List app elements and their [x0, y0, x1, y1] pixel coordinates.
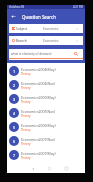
button[interactable]: Back [9, 12, 18, 21]
staticText: 5 [13, 125, 16, 130]
button[interactable]: Subject [9, 24, 83, 33]
staticText: Question Search [22, 14, 56, 20]
button[interactable]: 2 [7, 78, 85, 92]
staticText: Subject [16, 27, 28, 31]
staticText: Economics [43, 27, 59, 31]
staticText: 6 [13, 139, 16, 144]
staticText: Economics2005(Nov) [21, 109, 56, 114]
button[interactable]: 6 [7, 134, 85, 148]
staticText: Theory [21, 72, 31, 76]
staticText: Theory [21, 156, 31, 160]
staticText: Theory [21, 100, 31, 104]
staticText: 4:21 PM [73, 5, 83, 9]
button[interactable]: Recent apps [63, 165, 70, 172]
staticText: Theory [21, 86, 31, 90]
staticText: Economics2007(Nov) [21, 137, 56, 142]
staticText: 3 [13, 97, 16, 102]
button[interactable]: 1 [7, 64, 85, 78]
staticText: 2 [13, 83, 16, 88]
button[interactable]: 4 [7, 106, 85, 120]
staticText: 7 [13, 153, 16, 158]
button[interactable]: Search [73, 51, 78, 56]
button[interactable]: 5 [7, 120, 85, 134]
button[interactable]: 3 [7, 92, 85, 106]
button[interactable]: what is elasticity of demand [9, 49, 83, 58]
staticText: Economics2004(Nov) [21, 81, 56, 86]
staticText: Economics2006(May) [21, 123, 56, 128]
staticText: 1 [13, 69, 16, 74]
staticText: Theory [21, 142, 31, 146]
staticText: Theory [21, 128, 31, 132]
staticText: 4 [13, 111, 16, 116]
staticText: what is elasticity of demand [11, 52, 52, 56]
staticText: Branch [16, 39, 27, 43]
staticText: Theory [21, 114, 31, 118]
button[interactable]: Home [46, 165, 53, 172]
staticText: Economics2005(May) [21, 95, 56, 100]
button[interactable]: 7 [7, 148, 85, 162]
staticText: Vodafone IN [9, 5, 25, 9]
staticText: Economics2004(May) [21, 67, 56, 72]
button[interactable]: Branch [9, 36, 83, 45]
button[interactable]: Back [29, 165, 36, 172]
staticText: Economics2007(May) [21, 151, 56, 156]
staticText: Economics [43, 39, 59, 43]
